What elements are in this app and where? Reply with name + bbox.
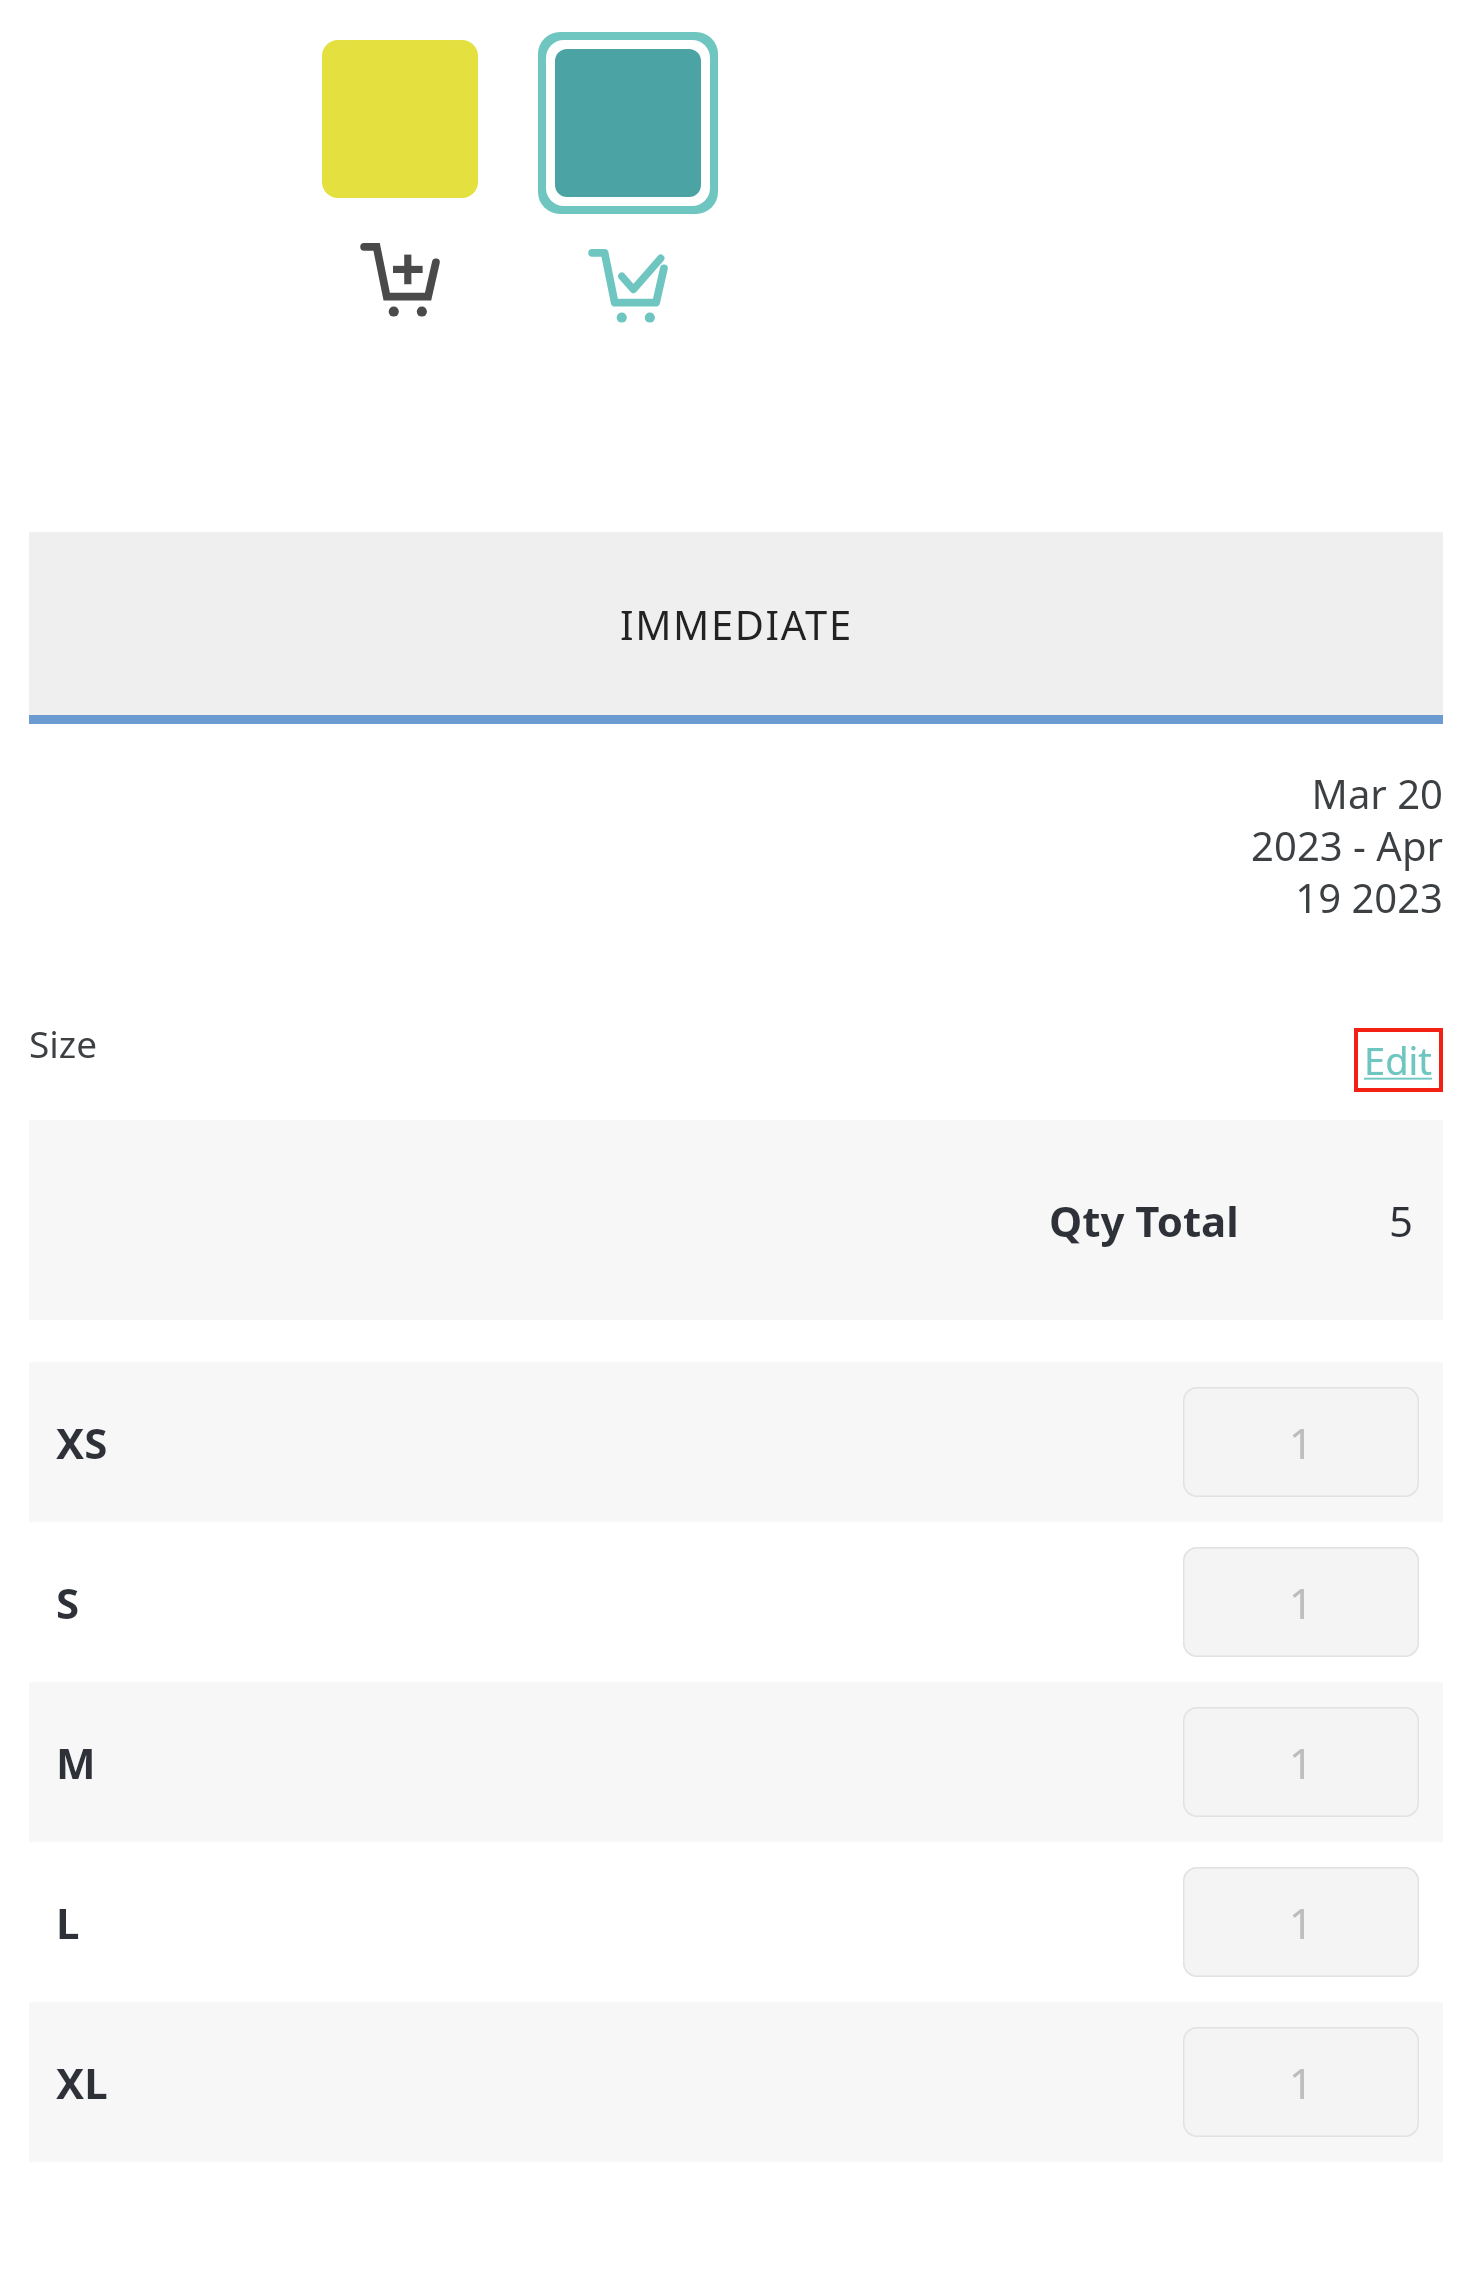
button[interactable]: Quantity for XS	[1183, 1387, 1419, 1497]
button[interactable]: Teal colour swatch, selected	[538, 32, 718, 214]
staticText: Size	[29, 1018, 98, 1068]
staticText: 1	[1289, 1414, 1314, 1471]
button[interactable]: Quantity for S	[1183, 1547, 1419, 1657]
staticText: L	[56, 1894, 80, 1951]
staticText: XL	[56, 2054, 108, 2111]
staticText: 1	[1289, 1574, 1314, 1631]
button[interactable]: Quantity for L	[1183, 1867, 1419, 1977]
button[interactable]: M	[29, 1682, 1443, 1842]
button[interactable]: In cart	[580, 236, 676, 332]
button[interactable]: L	[29, 1842, 1443, 2002]
staticText: 5	[1389, 1192, 1429, 1249]
staticText: Edit	[1364, 1034, 1433, 1086]
button[interactable]: XS	[29, 1362, 1443, 1522]
staticText: Mar 20 2023 - Apr 19 2023	[1183, 766, 1443, 925]
staticText: 1	[1289, 2054, 1314, 2111]
button[interactable]: IMMEDIATE	[29, 532, 1443, 715]
button[interactable]: Add to cart	[352, 230, 448, 326]
button[interactable]: Edit	[1358, 1032, 1439, 1088]
staticText: 1	[1289, 1734, 1314, 1791]
staticText: IMMEDIATE	[620, 597, 853, 651]
button[interactable]: XL	[29, 2002, 1443, 2162]
button[interactable]: Quantity for XL	[1183, 2027, 1419, 2137]
button[interactable]: Quantity for M	[1183, 1707, 1419, 1817]
button[interactable]: Yellow colour swatch	[322, 40, 478, 198]
staticText: XS	[56, 1414, 108, 1471]
button[interactable]: S	[29, 1522, 1443, 1682]
staticText: M	[56, 1734, 96, 1791]
staticText: Qty Total	[1049, 1192, 1239, 1249]
staticText: 1	[1289, 1894, 1314, 1951]
staticText: S	[56, 1574, 80, 1631]
